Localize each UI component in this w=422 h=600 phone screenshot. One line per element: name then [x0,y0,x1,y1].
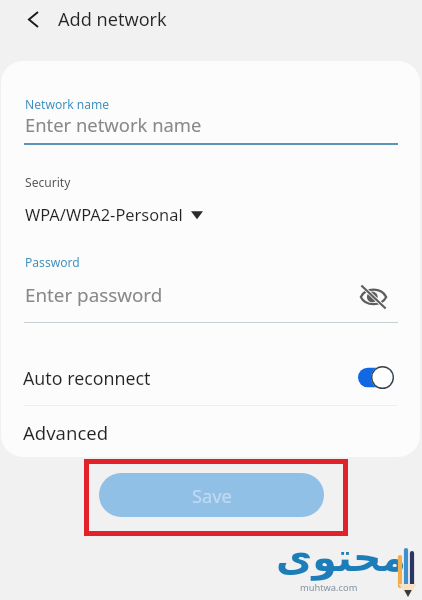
button[interactable]: Navigate up [10,0,54,41]
staticText: Add network [58,7,167,32]
button[interactable]: Password [1,245,341,305]
staticText: Enter password [25,282,163,308]
staticText: Enter network name [25,112,202,137]
staticText: muhtwa.com [300,581,358,594]
staticText: Password [25,254,80,270]
staticText: Advanced [23,420,109,445]
button[interactable]: Network name [1,86,420,146]
staticText: Auto reconnect [23,366,151,390]
staticText: محتوى [276,534,407,580]
button[interactable]: Auto reconnect [1,353,420,405]
staticText: Security [25,174,71,190]
button[interactable]: Save [99,473,324,517]
button[interactable]: Advanced [1,406,420,457]
staticText: Network name [25,96,110,112]
button[interactable]: WPA/WPA2-Personal [1,196,261,230]
button[interactable]: Auto reconnect on [358,366,394,389]
staticText: WPA/WPA2-Personal [25,203,183,225]
staticText: Save [192,483,232,508]
button[interactable]: Show password [352,275,394,317]
